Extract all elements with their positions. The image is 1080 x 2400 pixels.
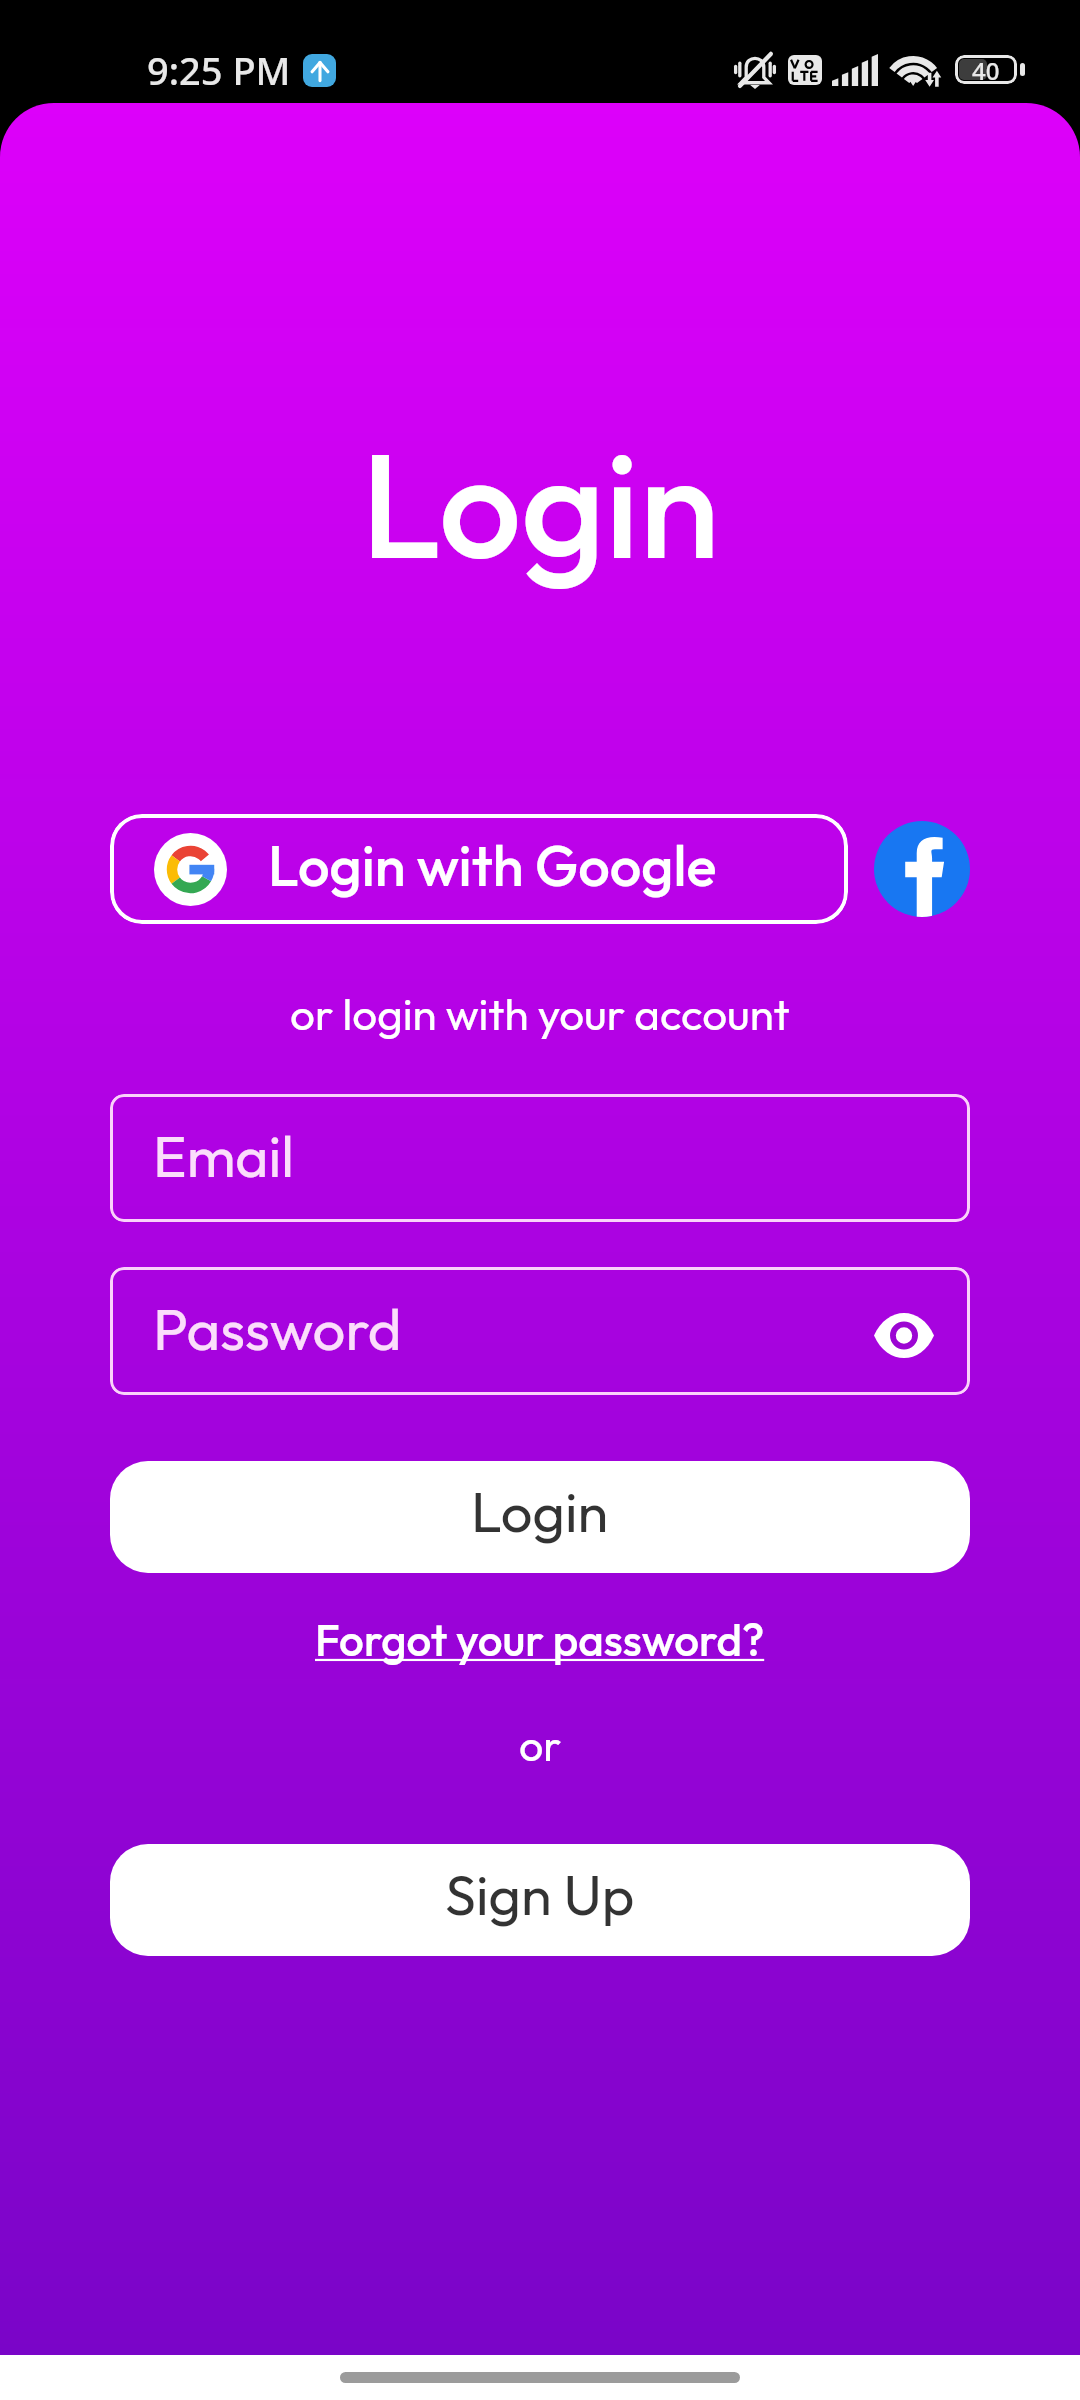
button[interactable]: Show password [867, 1294, 941, 1368]
staticText: 9:25 PM [147, 44, 291, 96]
button[interactable]: Login with Google [110, 814, 848, 924]
staticText: Forgot your password? [315, 1612, 765, 1667]
button[interactable]: Password [110, 1267, 970, 1395]
button[interactable]: Email [110, 1094, 970, 1222]
staticText: or [519, 1718, 562, 1772]
button[interactable]: Forgot your password? [299, 1604, 781, 1675]
staticText: or login with your account [290, 986, 790, 1041]
button[interactable]: Login [110, 1461, 970, 1573]
staticText: Sign Up [445, 1859, 635, 1930]
staticText: 40 [972, 55, 1000, 83]
staticText: Login [471, 1476, 609, 1547]
button[interactable]: Sign Up [110, 1844, 970, 1956]
staticText: Login [361, 412, 720, 596]
staticText: Login with Google [268, 830, 717, 901]
button[interactable]: Login with Facebook [874, 821, 970, 917]
staticText: Email [153, 1120, 294, 1192]
staticText: Password [153, 1292, 402, 1365]
